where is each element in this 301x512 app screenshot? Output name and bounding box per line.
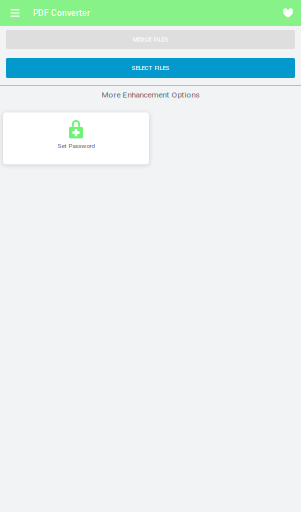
staticText: More Enhancement Options xyxy=(101,90,199,99)
staticText: Set Password xyxy=(57,142,94,150)
button[interactable]: SELECT FILES xyxy=(6,58,295,78)
staticText: SELECT FILES xyxy=(131,64,169,72)
button[interactable]: Menu xyxy=(4,0,26,26)
button[interactable]: Favorites xyxy=(277,0,299,26)
button[interactable]: Set Password xyxy=(3,112,149,164)
staticText: PDF Converter xyxy=(33,8,90,18)
staticText: MERGE FILES xyxy=(132,36,168,43)
